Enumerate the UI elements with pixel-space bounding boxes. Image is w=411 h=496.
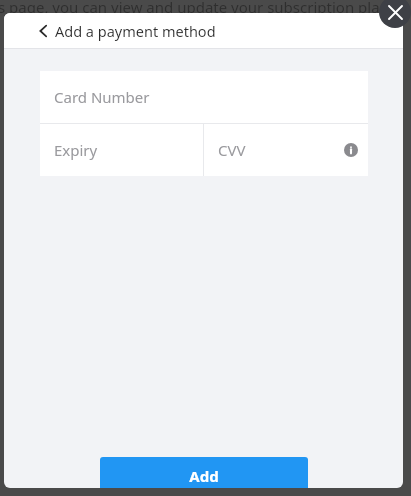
staticText: CVV [218,140,246,160]
staticText: Card Number [54,87,150,107]
staticText: s page, you can view and update your sub… [0,0,409,17]
staticText: Add [189,466,219,486]
button[interactable]: Close [379,0,411,28]
staticText: Add a payment method [55,21,216,41]
button[interactable]: Add a payment method [38,21,216,41]
button[interactable]: Add [100,457,308,488]
button[interactable]: Expiry [40,124,203,176]
staticText: Expiry [54,140,98,160]
button[interactable]: CVV information [334,124,368,176]
button[interactable]: CVV [204,124,334,176]
button[interactable]: Card Number [40,71,368,123]
